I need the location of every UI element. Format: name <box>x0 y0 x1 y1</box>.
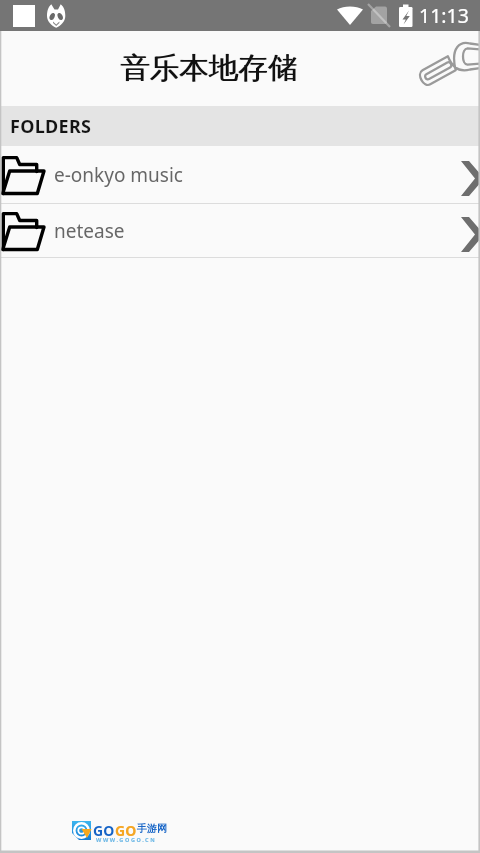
button[interactable]: e-onkyo music <box>0 146 480 203</box>
staticText: 音乐本地存储 <box>120 50 297 87</box>
staticText: 音乐本地存储 <box>121 50 298 87</box>
staticText: WWW.GOGO.CN <box>96 836 157 843</box>
staticText: 手游网 <box>137 822 167 835</box>
staticText: FOLDERS <box>10 114 92 139</box>
staticText: netease <box>54 218 125 244</box>
staticText: 11:13 <box>419 2 469 29</box>
staticText: GO <box>115 821 137 840</box>
staticText: e-onkyo music <box>54 162 183 188</box>
button[interactable]: netease <box>0 204 480 257</box>
button[interactable]: Settings <box>416 40 480 104</box>
staticText: GO <box>93 821 115 840</box>
